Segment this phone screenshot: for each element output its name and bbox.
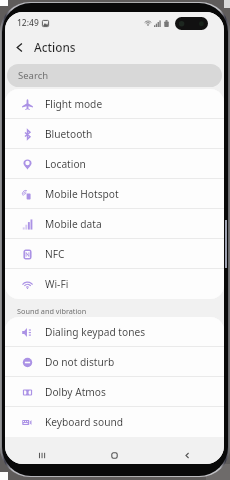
button[interactable]: Search <box>7 64 222 87</box>
staticText: Mobile Hotspot <box>45 187 119 201</box>
button[interactable]: Back <box>5 34 34 60</box>
staticText: Mobile data <box>45 217 102 231</box>
staticText: Actions <box>34 39 76 55</box>
button[interactable]: Keyboard sound <box>5 407 224 437</box>
button[interactable]: Dolby Atmos <box>5 377 224 407</box>
staticText: Sound and vibration <box>17 306 87 316</box>
staticText: Dialing keypad tones <box>45 325 146 339</box>
staticText: Location <box>45 157 86 171</box>
staticText: Keyboard sound <box>45 415 124 429</box>
staticText: Flight mode <box>45 97 103 111</box>
button[interactable]: Back <box>151 446 224 464</box>
button[interactable]: Mobile data <box>5 209 224 239</box>
staticText: Search <box>18 69 49 82</box>
staticText: Wi-Fi <box>45 277 69 291</box>
button[interactable]: Do not disturb <box>5 347 224 377</box>
button[interactable]: Recents <box>5 446 78 464</box>
button[interactable]: Home <box>78 446 151 464</box>
button[interactable]: NFC <box>5 239 224 269</box>
staticText: NFC <box>45 247 65 261</box>
staticText: Bluetooth <box>45 127 93 141</box>
button[interactable]: Location <box>5 149 224 179</box>
staticText: 12:49 <box>17 17 39 29</box>
button[interactable]: Dialing keypad tones <box>5 317 224 347</box>
button[interactable]: Mobile Hotspot <box>5 179 224 209</box>
staticText: Dolby Atmos <box>45 385 106 399</box>
button[interactable]: Bluetooth <box>5 119 224 149</box>
button[interactable]: Wi-Fi <box>5 269 224 299</box>
staticText: Do not disturb <box>45 355 115 369</box>
button[interactable]: Flight mode <box>5 89 224 119</box>
